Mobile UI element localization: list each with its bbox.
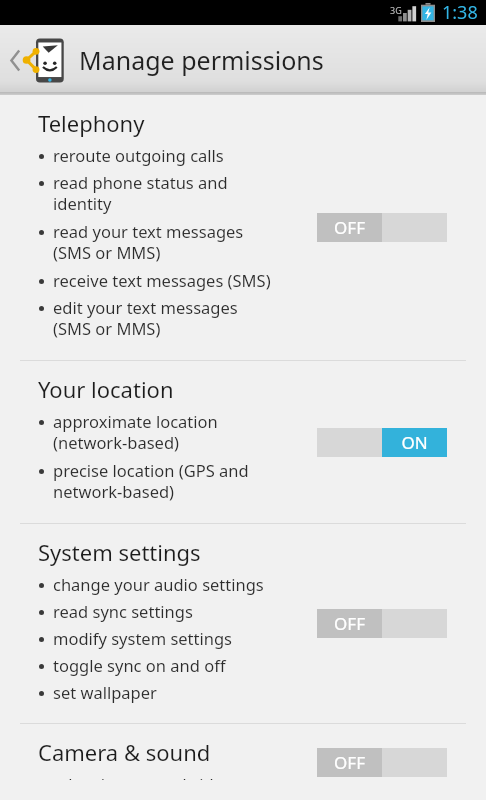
staticText: Telephony xyxy=(38,108,145,138)
staticText: modify system settings xyxy=(53,627,233,649)
button[interactable]: Toggle off xyxy=(317,213,447,242)
staticText: Manage permissions xyxy=(79,43,324,77)
staticText: Your location xyxy=(38,374,174,404)
staticText: ON xyxy=(401,431,428,454)
staticText: take pictures and videos xyxy=(53,773,241,780)
staticText: 1:38 xyxy=(442,0,478,25)
staticText: approximate location (network-based) xyxy=(53,410,218,454)
button[interactable]: Toggle off xyxy=(317,609,447,638)
staticText: receive text messages (SMS) xyxy=(53,269,271,291)
staticText: OFF xyxy=(334,751,365,774)
staticText: change your audio settings xyxy=(53,573,264,595)
staticText: set wallpaper xyxy=(53,681,157,703)
button[interactable]: Navigate up xyxy=(0,27,70,93)
button[interactable]: Toggle off xyxy=(317,748,447,777)
staticText: reroute outgoing calls xyxy=(53,144,224,166)
staticText: toggle sync on and off xyxy=(53,654,226,676)
staticText: System settings xyxy=(38,537,201,567)
button[interactable]: Toggle on xyxy=(317,428,447,457)
staticText: read your text messages (SMS or MMS) xyxy=(53,220,244,264)
staticText: precise location (GPS and network-based) xyxy=(53,459,249,503)
staticText: 3G xyxy=(390,4,402,16)
staticText: edit your text messages (SMS or MMS) xyxy=(53,296,238,340)
staticText: OFF xyxy=(334,216,365,239)
staticText: Camera & sound xyxy=(38,737,211,767)
staticText: OFF xyxy=(334,612,365,635)
staticText: read phone status and identity xyxy=(53,171,228,215)
staticText: read sync settings xyxy=(53,600,193,622)
